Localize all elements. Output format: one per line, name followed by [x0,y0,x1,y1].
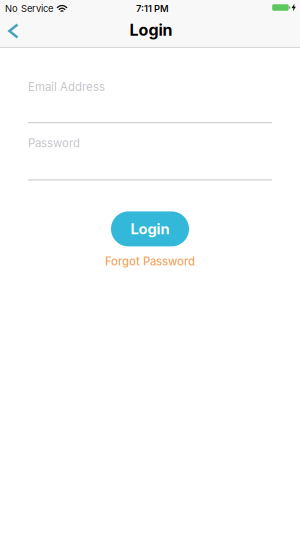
staticText: Password [28,136,80,150]
button[interactable]: Password [28,136,272,180]
staticText: Email Address [28,80,105,94]
staticText: Login [130,220,169,238]
staticText: No Service [5,3,53,14]
staticText: 7:11 PM [136,3,169,14]
button[interactable]: Forgot Password [105,254,195,268]
button[interactable]: Login [111,211,189,246]
staticText: Forgot Password [105,254,195,268]
staticText: Login [129,20,172,40]
button[interactable]: Email Address [28,80,272,123]
button[interactable]: Back [0,24,19,39]
